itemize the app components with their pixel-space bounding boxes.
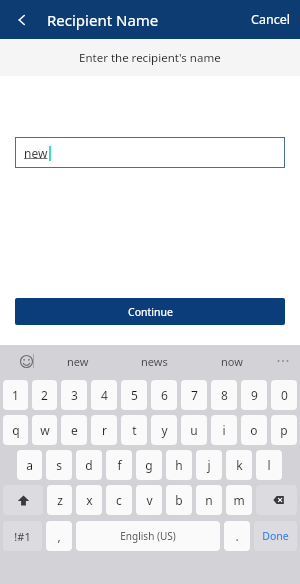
staticText: n bbox=[205, 492, 213, 508]
button[interactable]: t bbox=[121, 415, 147, 445]
staticText: Enter the recipient's name bbox=[79, 50, 221, 66]
button[interactable]: 6 bbox=[151, 380, 177, 410]
staticText: p bbox=[280, 422, 288, 438]
staticText: 0 bbox=[281, 387, 288, 403]
button[interactable]: English (US) bbox=[76, 521, 220, 551]
staticText: r bbox=[102, 422, 107, 438]
button[interactable]: 2 bbox=[32, 380, 57, 410]
button[interactable]: Continue bbox=[15, 298, 285, 325]
button[interactable]: Done bbox=[254, 521, 297, 551]
button[interactable]: g bbox=[136, 450, 162, 480]
button[interactable]: u bbox=[181, 415, 207, 445]
button[interactable]: 5 bbox=[121, 380, 147, 410]
button[interactable]: Backspace bbox=[256, 485, 297, 515]
staticText: news bbox=[141, 354, 168, 369]
staticText: g bbox=[145, 457, 153, 473]
staticText: s bbox=[56, 457, 62, 473]
button[interactable]: s bbox=[46, 450, 72, 480]
staticText: f bbox=[117, 457, 122, 473]
staticText: 9 bbox=[251, 387, 258, 403]
button[interactable]: 3 bbox=[61, 380, 87, 410]
staticText: h bbox=[175, 457, 183, 473]
staticText: t bbox=[132, 422, 137, 438]
staticText: !#1 bbox=[14, 529, 31, 544]
staticText: now bbox=[221, 354, 243, 369]
button[interactable]: 7 bbox=[181, 380, 207, 410]
button[interactable]: e bbox=[61, 415, 87, 445]
button[interactable]: Emoji bbox=[14, 349, 38, 373]
staticText: 3 bbox=[71, 387, 78, 403]
button[interactable]: p bbox=[271, 415, 297, 445]
button[interactable]: now bbox=[193, 345, 270, 377]
staticText: Done bbox=[262, 529, 289, 543]
button[interactable]: new bbox=[40, 345, 116, 377]
button[interactable]: w bbox=[32, 415, 57, 445]
button[interactable]: o bbox=[241, 415, 267, 445]
staticText: x bbox=[86, 492, 93, 508]
staticText: v bbox=[146, 492, 153, 508]
button[interactable]: r bbox=[91, 415, 117, 445]
button[interactable]: i bbox=[211, 415, 237, 445]
staticText: new bbox=[24, 145, 48, 161]
button[interactable]: q bbox=[3, 415, 28, 445]
button[interactable]: news bbox=[116, 345, 193, 377]
button[interactable]: 8 bbox=[211, 380, 237, 410]
staticText: 5 bbox=[131, 387, 138, 403]
staticText: 7 bbox=[191, 387, 198, 403]
button[interactable]: 9 bbox=[241, 380, 267, 410]
staticText: i bbox=[222, 422, 226, 438]
staticText: 1 bbox=[12, 387, 19, 403]
staticText: q bbox=[12, 422, 20, 438]
staticText: d bbox=[85, 457, 93, 473]
button[interactable]: m bbox=[226, 485, 252, 515]
button[interactable]: k bbox=[226, 450, 252, 480]
button[interactable]: f bbox=[106, 450, 132, 480]
button[interactable]: 1 bbox=[3, 380, 28, 410]
staticText: 2 bbox=[41, 387, 48, 403]
staticText: b bbox=[175, 492, 183, 508]
button[interactable]: l bbox=[256, 450, 282, 480]
staticText: y bbox=[161, 422, 168, 438]
staticText: Recipient Name bbox=[47, 10, 159, 30]
staticText: o bbox=[250, 422, 258, 438]
button[interactable]: x bbox=[76, 485, 102, 515]
button[interactable]: c bbox=[106, 485, 132, 515]
staticText: new bbox=[67, 354, 89, 369]
staticText: 4 bbox=[101, 387, 108, 403]
staticText: . bbox=[235, 528, 239, 544]
staticText: , bbox=[57, 528, 61, 544]
button[interactable]: b bbox=[166, 485, 192, 515]
button[interactable]: v bbox=[136, 485, 162, 515]
button[interactable]: !#1 bbox=[3, 521, 42, 551]
staticText: e bbox=[71, 422, 78, 438]
staticText: English (US) bbox=[120, 529, 176, 543]
button[interactable]: , bbox=[46, 521, 72, 551]
staticText: m bbox=[233, 492, 245, 508]
staticText: k bbox=[236, 457, 243, 473]
staticText: Continue bbox=[128, 305, 173, 319]
button[interactable]: Cancel bbox=[241, 3, 300, 36]
button[interactable]: a bbox=[17, 450, 42, 480]
staticText: c bbox=[116, 492, 122, 508]
button[interactable]: z bbox=[47, 485, 72, 515]
button[interactable]: . bbox=[224, 521, 250, 551]
button[interactable]: j bbox=[196, 450, 222, 480]
button[interactable]: n bbox=[196, 485, 222, 515]
button[interactable]: y bbox=[151, 415, 177, 445]
button[interactable]: new bbox=[15, 137, 285, 168]
button[interactable]: More suggestions bbox=[270, 345, 296, 377]
staticText: a bbox=[26, 457, 33, 473]
staticText: 6 bbox=[161, 387, 168, 403]
staticText: j bbox=[207, 457, 211, 473]
button[interactable]: Back bbox=[6, 4, 38, 36]
button[interactable]: 4 bbox=[91, 380, 117, 410]
staticText: w bbox=[40, 422, 50, 438]
button[interactable]: Shift bbox=[3, 485, 43, 515]
staticText: u bbox=[190, 422, 198, 438]
staticText: l bbox=[267, 457, 271, 473]
button[interactable]: h bbox=[166, 450, 192, 480]
button[interactable]: d bbox=[76, 450, 102, 480]
button[interactable]: 0 bbox=[271, 380, 297, 410]
staticText: Cancel bbox=[251, 11, 290, 28]
staticText: z bbox=[57, 492, 63, 508]
